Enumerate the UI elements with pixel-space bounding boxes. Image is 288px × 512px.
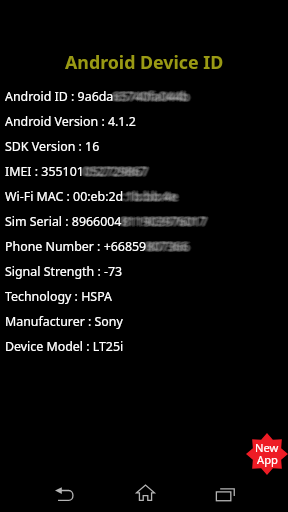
- staticText: Android ID : 9a6da65740fa044b: [4, 87, 188, 104]
- staticText: Wi-Fi MAC : 00:eb:2d:1b:bb:4e: [5, 187, 178, 204]
- staticText: Sim Serial : 8966004811903976017: [6, 214, 208, 231]
- staticText: Phone Number : +66859807366: [6, 239, 190, 256]
- staticText: Phone Number : +66859807366: [5, 238, 189, 255]
- staticText: Wi-Fi MAC : 00:eb:2d:1b:bb:4e: [5, 189, 178, 206]
- staticText: Wi-Fi MAC : 00:eb:2d:1b:bb:4e: [6, 189, 179, 206]
- staticText: Android Version : 4.1.2: [5, 113, 136, 130]
- staticText: Wi-Fi MAC : 00:eb:2d:1b:bb:4e: [3, 188, 176, 205]
- staticText: Sim Serial : 8966004811903976017: [3, 214, 205, 231]
- staticText: Phone Number : +66859807366: [5, 239, 189, 256]
- staticText: Wi-Fi MAC : 00:eb:2d:1b:bb:4e: [7, 188, 180, 205]
- staticText: IMEI : 355101052729867: [4, 162, 147, 179]
- staticText: Phone Number : +66859807366: [5, 238, 189, 255]
- staticText: Android ID : 9a6da65740fa044b: [5, 88, 189, 105]
- staticText: IMEI : 355101052729867: [3, 162, 146, 179]
- staticText: Wi-Fi MAC : 00:eb:2d:1b:bb:4e: [3, 189, 176, 206]
- staticText: Android ID : 9a6da65740fa044b: [6, 89, 190, 106]
- staticText: Phone Number : +66859807366: [8, 238, 192, 255]
- staticText: IMEI : 355101052729867: [4, 163, 147, 180]
- staticText: Android ID : 9a6da65740fa044b: [5, 87, 189, 104]
- staticText: SDK Version : 16: [5, 138, 100, 155]
- staticText: Android ID : 9a6da65740fa044b: [4, 88, 188, 105]
- staticText: Android ID : 9a6da65740fa044b: [3, 89, 187, 106]
- staticText: Phone Number : +66859807366: [3, 237, 187, 254]
- staticText: Android Device ID: [65, 50, 224, 74]
- staticText: Sim Serial : 8966004811903976017: [2, 213, 204, 230]
- staticText: Wi-Fi MAC : 00:eb:2d:1b:bb:4e: [6, 188, 179, 205]
- staticText: Phone Number : +66859807366: [7, 237, 191, 254]
- staticText: Sim Serial : 8966004811903976017: [4, 213, 206, 230]
- staticText: Android ID : 9a6da65740fa044b: [8, 88, 192, 105]
- button[interactable]: Home: [121, 474, 169, 510]
- staticText: Sim Serial : 8966004811903976017: [6, 213, 208, 230]
- staticText: IMEI : 355101052729867: [5, 164, 148, 181]
- staticText: IMEI : 355101052729867: [7, 163, 150, 180]
- staticText: Sim Serial : 8966004811903976017: [8, 213, 210, 230]
- staticText: Sim Serial : 8966004811903976017: [7, 213, 209, 230]
- staticText: Device Model : LT25i: [5, 338, 124, 355]
- staticText: Android ID : 9a6da65740fa044b: [6, 88, 190, 105]
- staticText: Android ID : 9a6da65740fa044b: [7, 89, 191, 106]
- staticText: Technology : HSPA: [5, 288, 112, 305]
- button[interactable]: Back: [40, 476, 88, 512]
- staticText: Sim Serial : 8966004811903976017: [7, 214, 209, 231]
- staticText: Sim Serial : 8966004811903976017: [4, 212, 206, 229]
- staticText: Sim Serial : 8966004811903976017: [3, 212, 205, 229]
- staticText: Wi-Fi MAC : 00:eb:2d:1b:bb:4e: [8, 188, 181, 205]
- staticText: Sim Serial : 8966004811903976017: [7, 212, 209, 229]
- staticText: Manufacturer : Sony: [5, 313, 123, 330]
- staticText: Android ID : 9a6da65740fa044b: [7, 88, 191, 105]
- staticText: App: [257, 452, 278, 467]
- button[interactable]: New App: [246, 433, 288, 475]
- staticText: IMEI : 355101052729867: [5, 162, 148, 179]
- staticText: IMEI : 355101052729867: [6, 163, 149, 180]
- staticText: Phone Number : +66859807366: [3, 238, 187, 255]
- staticText: IMEI : 355101052729867: [7, 164, 150, 181]
- staticText: Android ID : 9a6da65740fa044b: [2, 88, 186, 105]
- button[interactable]: Recents: [201, 476, 249, 512]
- staticText: IMEI : 355101052729867: [5, 163, 148, 180]
- staticText: Wi-Fi MAC : 00:eb:2d:1b:bb:4e: [4, 188, 177, 205]
- staticText: New: [255, 440, 279, 455]
- staticText: Phone Number : +66859807366: [4, 237, 188, 254]
- staticText: Sim Serial : 8966004811903976017: [5, 212, 207, 229]
- staticText: Phone Number : +66859807366: [4, 238, 188, 255]
- staticText: Wi-Fi MAC : 00:eb:2d:1b:bb:4e: [5, 188, 178, 205]
- staticText: Android ID : 9a6da65740fa044b: [7, 87, 191, 104]
- staticText: Wi-Fi MAC : 00:eb:2d:1b:bb:4e: [5, 188, 178, 205]
- staticText: Phone Number : +66859807366: [6, 238, 190, 255]
- staticText: Android ID : 9a6da65740fa044b: [5, 88, 189, 105]
- staticText: IMEI : 355101052729867: [3, 163, 146, 180]
- staticText: Sim Serial : 8966004811903976017: [5, 214, 207, 231]
- staticText: Phone Number : +66859807366: [5, 237, 189, 254]
- staticText: Android ID : 9a6da65740fa044b: [3, 88, 187, 105]
- staticText: IMEI : 355101052729867: [3, 164, 146, 181]
- staticText: Phone Number : +66859807366: [3, 239, 187, 256]
- staticText: IMEI : 355101052729867: [6, 164, 149, 181]
- staticText: Phone Number : +66859807366: [7, 239, 191, 256]
- staticText: Wi-Fi MAC : 00:eb:2d:1b:bb:4e: [7, 189, 180, 206]
- staticText: Signal Strength : -73: [5, 263, 123, 280]
- staticText: Phone Number : +66859807366: [2, 238, 186, 255]
- staticText: Sim Serial : 8966004811903976017: [5, 213, 207, 230]
- staticText: Wi-Fi MAC : 00:eb:2d:1b:bb:4e: [3, 187, 176, 204]
- staticText: IMEI : 355101052729867: [8, 163, 151, 180]
- staticText: IMEI : 355101052729867: [7, 162, 150, 179]
- staticText: Sim Serial : 8966004811903976017: [5, 213, 207, 230]
- staticText: Phone Number : +66859807366: [7, 238, 191, 255]
- staticText: Android ID : 9a6da65740fa044b: [3, 87, 187, 104]
- staticText: Wi-Fi MAC : 00:eb:2d:1b:bb:4e: [2, 188, 175, 205]
- staticText: Android ID : 9a6da65740fa044b: [5, 89, 189, 106]
- staticText: IMEI : 355101052729867: [5, 163, 148, 180]
- staticText: Wi-Fi MAC : 00:eb:2d:1b:bb:4e: [7, 187, 180, 204]
- staticText: Sim Serial : 8966004811903976017: [3, 213, 205, 230]
- staticText: IMEI : 355101052729867: [2, 163, 145, 180]
- staticText: Wi-Fi MAC : 00:eb:2d:1b:bb:4e: [4, 187, 177, 204]
